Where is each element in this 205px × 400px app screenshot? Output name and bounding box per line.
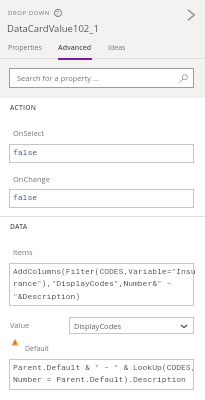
staticText: OnChange bbox=[13, 174, 50, 184]
button[interactable]: Help bbox=[53, 8, 62, 17]
staticText: ACTION bbox=[10, 103, 37, 112]
staticText: DROP DOWN bbox=[8, 9, 50, 17]
staticText: Value bbox=[10, 320, 30, 330]
staticText: Properties bbox=[8, 43, 42, 53]
button[interactable]: false bbox=[9, 144, 194, 163]
button[interactable]: Ideas bbox=[100, 43, 134, 60]
staticText: Ideas bbox=[108, 43, 126, 53]
staticText: "&Description) bbox=[13, 291, 81, 302]
staticText: false bbox=[13, 192, 38, 203]
staticText: Default bbox=[25, 344, 49, 354]
staticText: DataCardValue102_1 bbox=[7, 22, 99, 35]
button[interactable]: Advanced bbox=[50, 43, 100, 60]
staticText: false bbox=[13, 147, 38, 158]
button[interactable]: Search for a property ... bbox=[9, 68, 194, 88]
button[interactable]: Expand bbox=[179, 4, 200, 25]
staticText: Number = Parent.Default).Description bbox=[13, 374, 186, 385]
button[interactable]: Parent.Default & " - " & LookUp(CODES, bbox=[9, 359, 194, 390]
other: Warning bbox=[11, 338, 19, 346]
staticText: ? bbox=[56, 9, 59, 17]
other: Search bbox=[178, 73, 189, 84]
staticText: rance"),"DisplayCodes",Number&" - bbox=[13, 278, 177, 289]
staticText: DATA bbox=[10, 222, 28, 231]
staticText: OnSelect bbox=[13, 128, 45, 138]
button[interactable]: Properties bbox=[0, 43, 50, 60]
staticText: Items bbox=[13, 247, 33, 257]
staticText: Advanced bbox=[58, 43, 92, 53]
button[interactable]: DisplayCodes bbox=[69, 317, 194, 334]
staticText: Search for a property ... bbox=[17, 73, 99, 83]
staticText: DisplayCodes bbox=[74, 321, 122, 331]
staticText: AddColumns(Filter(CODES,Variable="Insu bbox=[13, 266, 196, 277]
staticText: Parent.Default & " - " & LookUp(CODES, bbox=[13, 362, 196, 373]
button[interactable]: AddColumns(Filter(CODES,Variable="Insu bbox=[9, 263, 194, 306]
button[interactable]: false bbox=[9, 189, 194, 208]
